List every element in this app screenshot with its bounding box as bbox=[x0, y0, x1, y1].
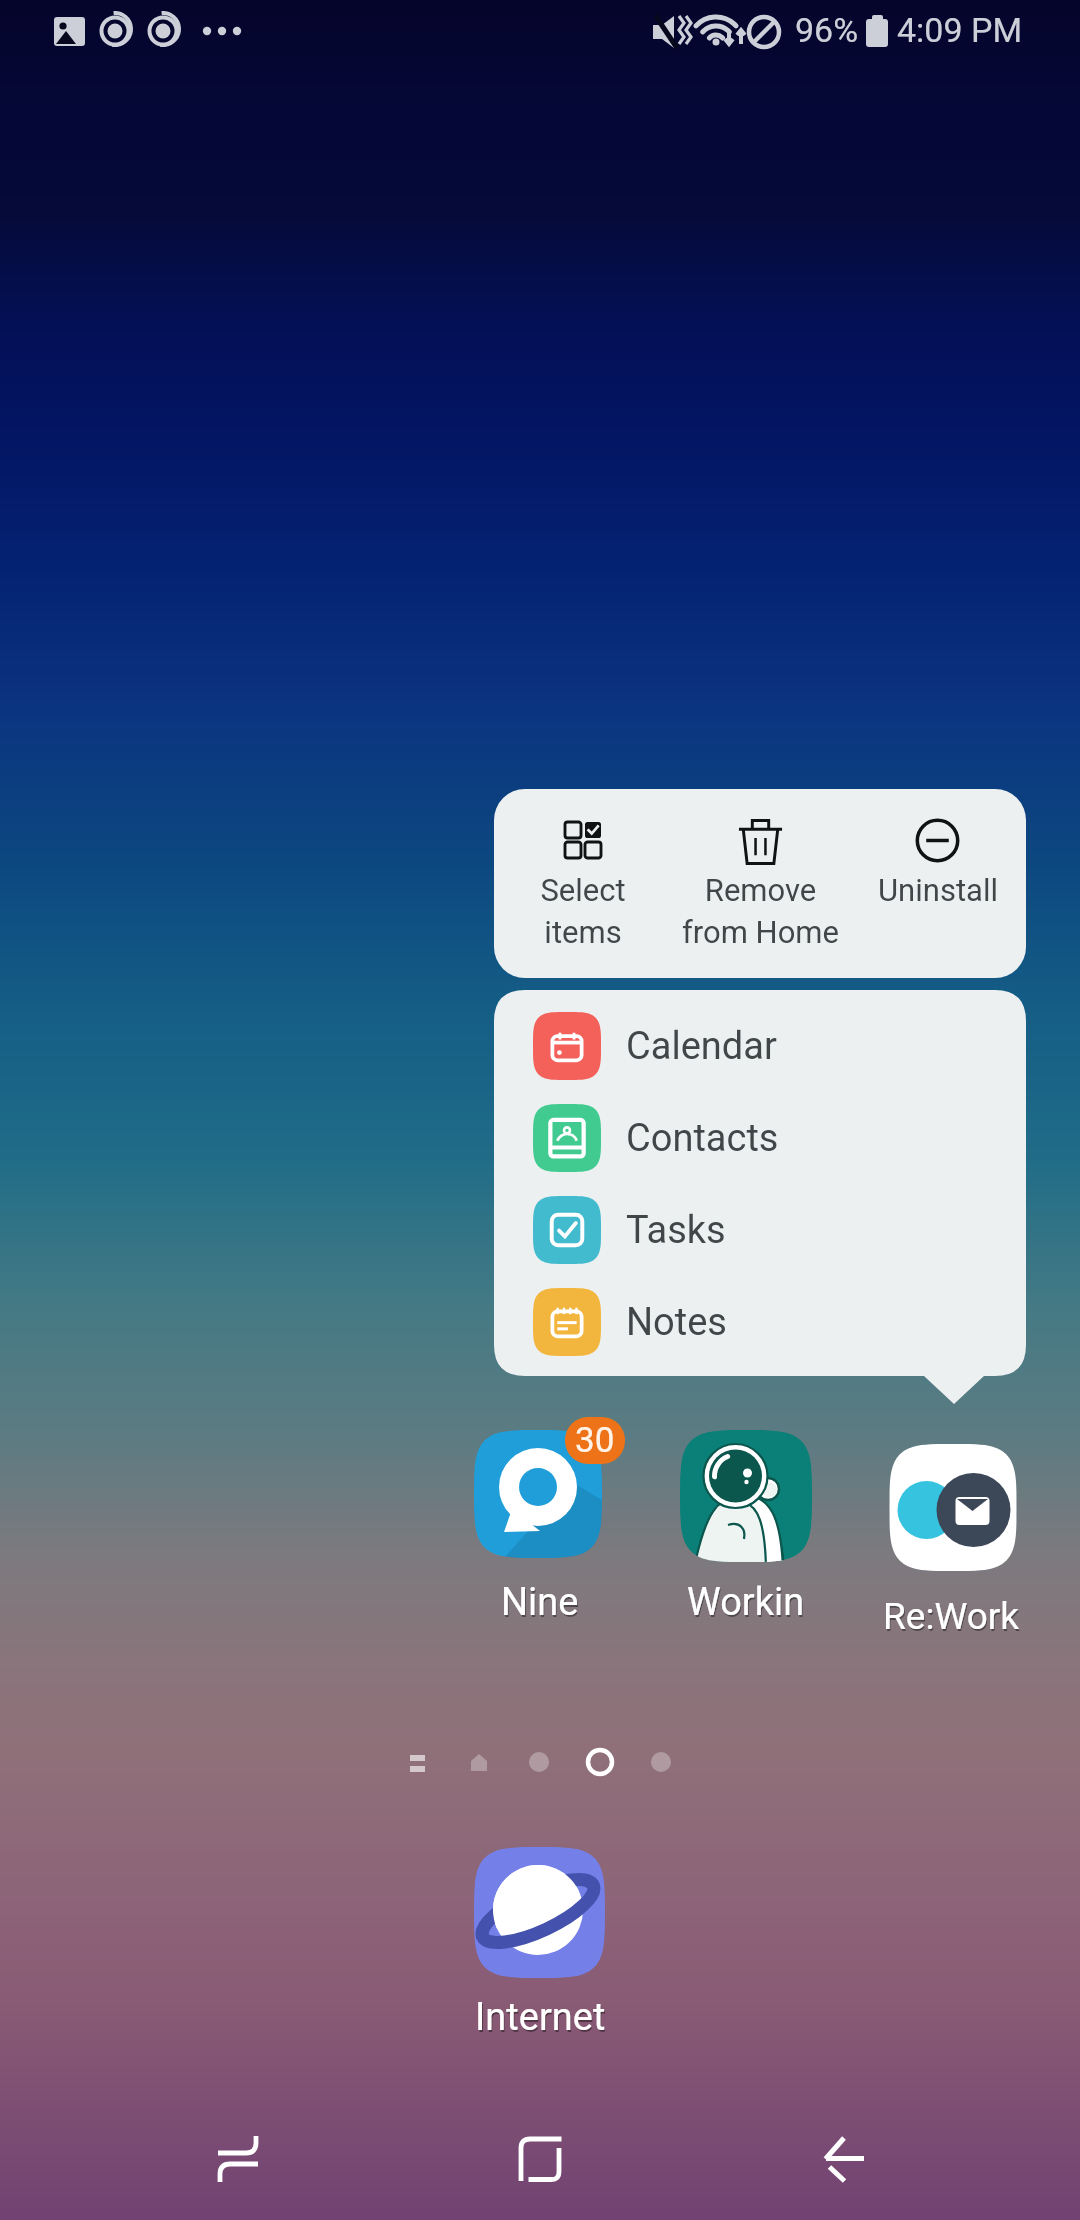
staticText: Workin bbox=[687, 1580, 805, 1625]
button[interactable]: Uninstall bbox=[849, 789, 1026, 978]
staticText: Re:Work bbox=[884, 1597, 1021, 1640]
staticText: Contacts bbox=[626, 1116, 779, 1161]
button[interactable]: Home bbox=[480, 2110, 600, 2210]
button[interactable]: Re:Work bbox=[855, 1420, 1055, 1640]
staticText: Calendar bbox=[626, 1024, 777, 1069]
button[interactable]: Workin bbox=[646, 1420, 846, 1640]
button[interactable]: Remove from Home bbox=[672, 789, 849, 978]
staticText: Nine bbox=[501, 1580, 579, 1625]
staticText: 96% bbox=[795, 10, 859, 50]
staticText: Tasks bbox=[626, 1208, 726, 1253]
button[interactable]: Calendar bbox=[494, 1000, 1026, 1092]
staticText: Nine bbox=[502, 1582, 580, 1627]
staticText: Re:Work bbox=[883, 1595, 1020, 1638]
button[interactable]: 30 bbox=[440, 1420, 640, 1640]
button[interactable]: Contacts bbox=[494, 1092, 1026, 1184]
staticText: Notes bbox=[626, 1300, 727, 1345]
staticText: Internet bbox=[475, 1995, 606, 2040]
button[interactable]: Select items bbox=[494, 789, 672, 978]
staticText: Remove from Home bbox=[682, 872, 839, 951]
staticText: 30 bbox=[575, 1420, 615, 1461]
staticText: Uninstall bbox=[878, 872, 998, 908]
button[interactable]: Internet bbox=[440, 1840, 640, 2070]
staticText: Internet bbox=[476, 1997, 607, 2042]
staticText: Workin bbox=[688, 1582, 806, 1627]
staticText: 4:09 PM bbox=[897, 10, 1023, 50]
staticText: Select items bbox=[540, 872, 626, 951]
button[interactable]: Tasks bbox=[494, 1184, 1026, 1276]
button[interactable]: Notes bbox=[494, 1276, 1026, 1368]
button[interactable]: Recents bbox=[180, 2110, 300, 2210]
button[interactable]: Back bbox=[780, 2110, 900, 2210]
